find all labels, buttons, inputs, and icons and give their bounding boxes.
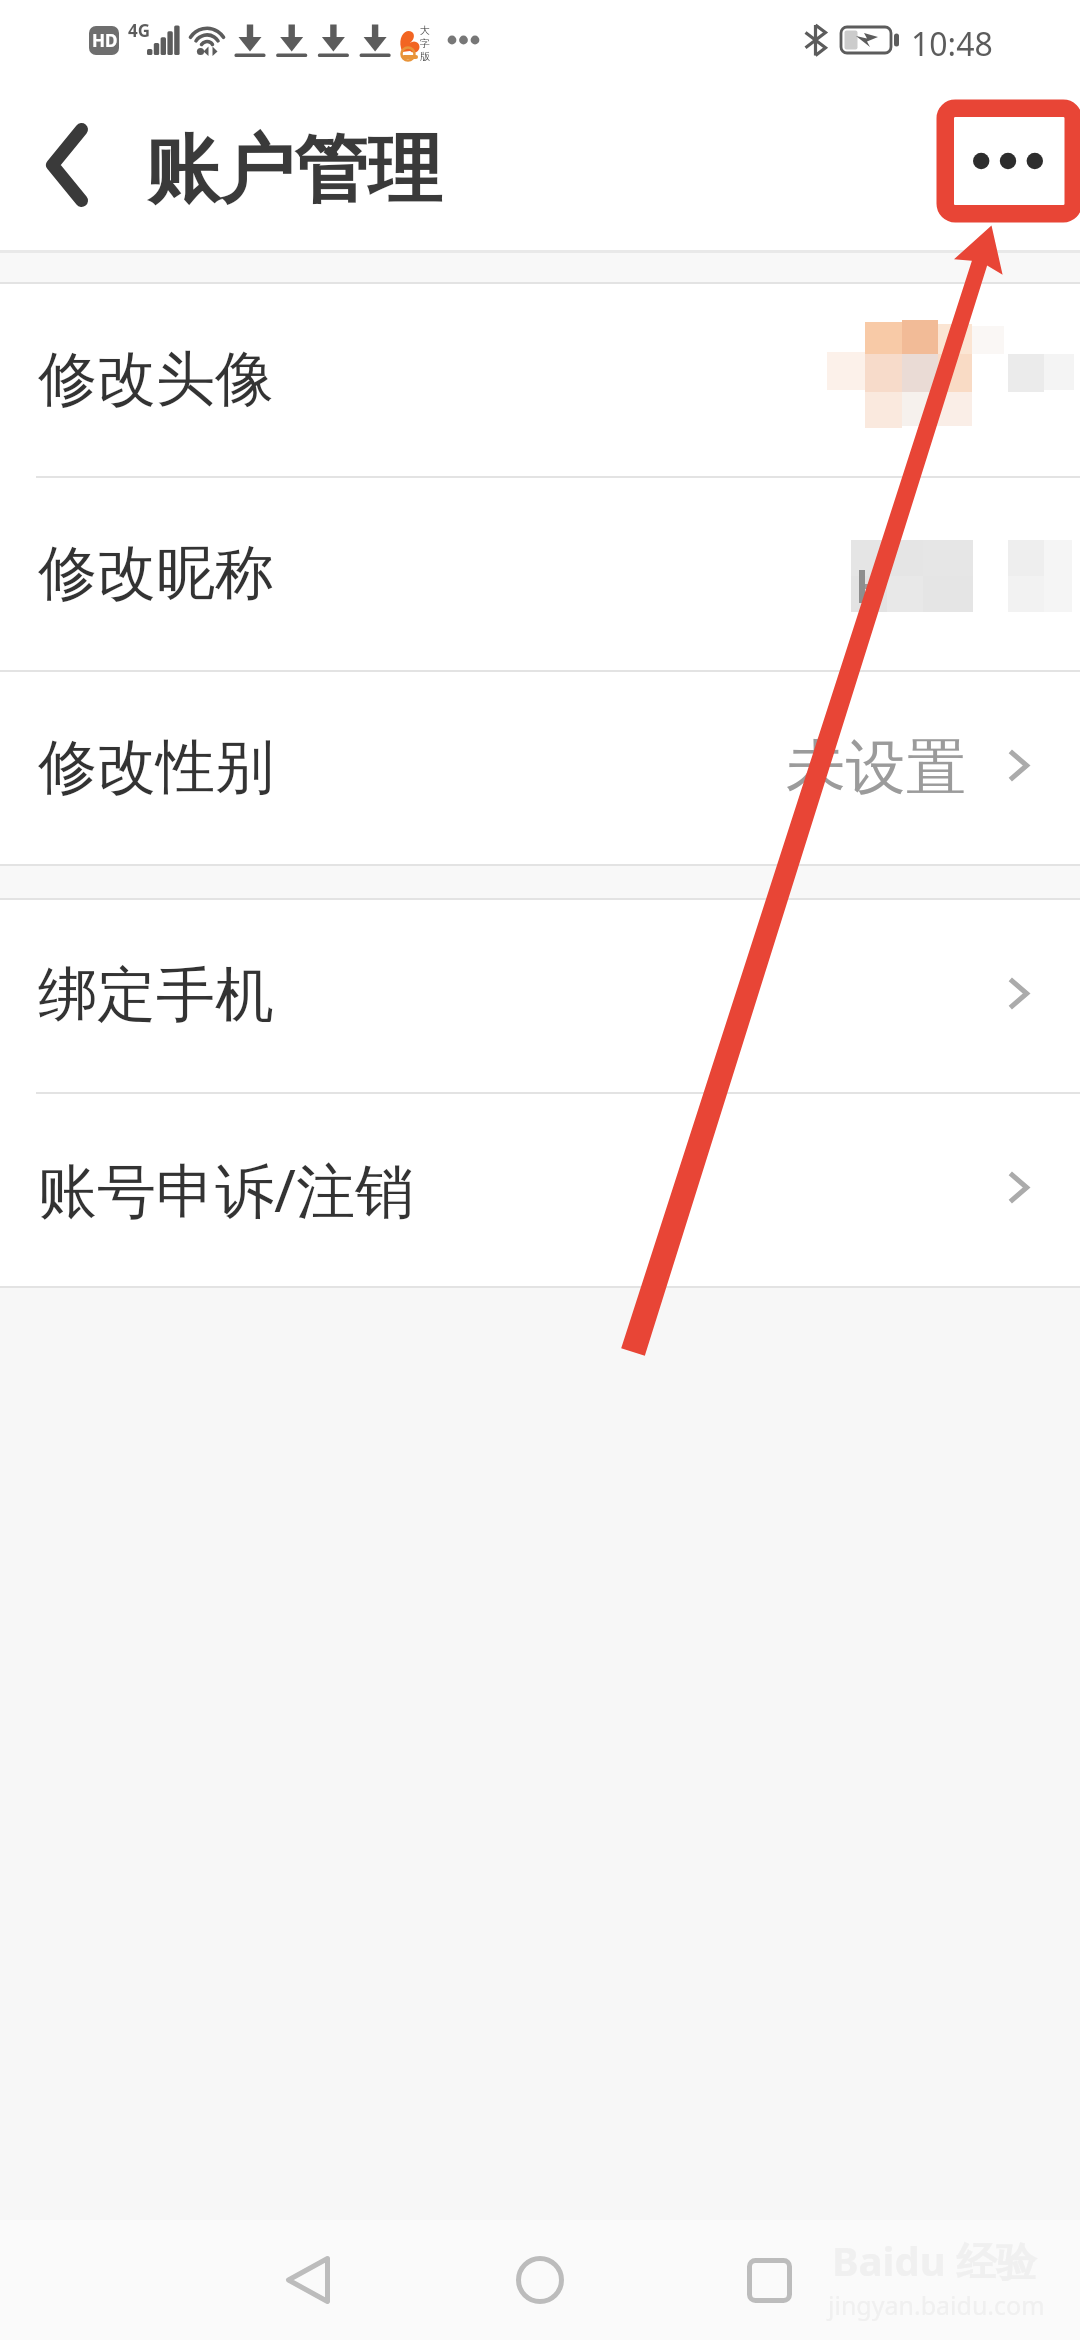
staticText: 未设置 (786, 730, 966, 806)
staticText: 字 (420, 37, 430, 50)
button[interactable]: 账号申诉/注销 (0, 1094, 1080, 1286)
staticText: 绑定手机 (38, 958, 274, 1032)
staticText: jingyan.baidu.com (828, 2288, 1045, 2322)
button[interactable]: Recent apps (713, 2220, 825, 2340)
button[interactable]: 绑定手机 (0, 900, 1080, 1092)
button[interactable]: System back (252, 2220, 364, 2340)
staticText: HD (92, 29, 118, 52)
staticText: 版 (420, 50, 430, 63)
button[interactable]: Home (484, 2220, 596, 2340)
button[interactable]: Back (0, 72, 134, 250)
button[interactable]: 修改头像 (0, 284, 1080, 476)
staticText: 大 (420, 24, 430, 37)
button[interactable]: More options (935, 72, 1080, 250)
staticText: 修改性别 (38, 730, 274, 804)
button[interactable]: 修改性别 (0, 672, 1080, 864)
staticText: 10:48 (911, 22, 993, 66)
staticText: Baidu 经验 (832, 2233, 1037, 2288)
button[interactable]: 修改昵称 (0, 478, 1080, 670)
staticText: 修改头像 (38, 342, 274, 416)
staticText: 账号申诉/注销 (38, 1149, 414, 1230)
staticText: 修改昵称 (38, 536, 274, 610)
staticText: 4G (128, 19, 151, 42)
staticText: 账户管理 (146, 124, 442, 217)
